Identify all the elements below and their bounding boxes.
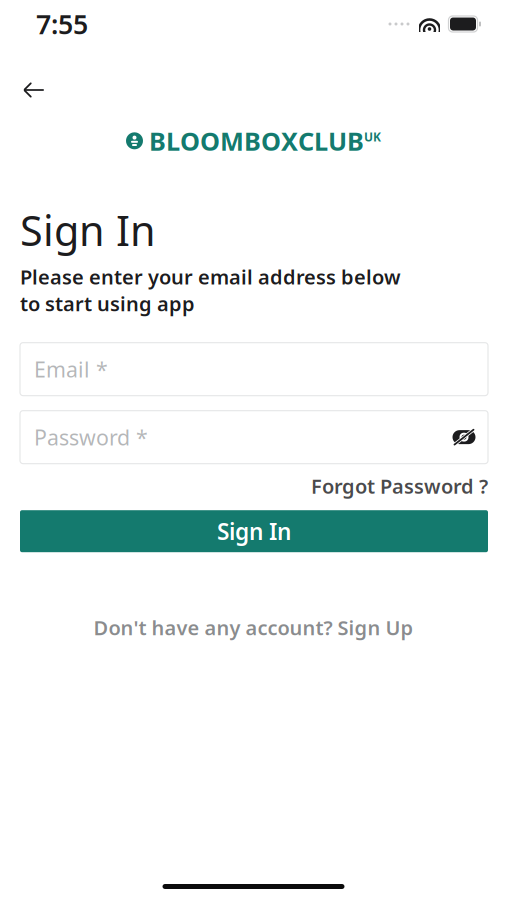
staticText: UK bbox=[364, 129, 381, 145]
button[interactable]: Don't have any account? Sign Up bbox=[93, 614, 413, 641]
staticText: Don't have any account? Sign Up bbox=[93, 614, 413, 641]
staticText: Sign In bbox=[217, 516, 291, 546]
staticText: X bbox=[281, 124, 298, 158]
staticText: Password * bbox=[34, 423, 148, 451]
staticText: 7:55 bbox=[36, 6, 88, 42]
staticText: Sign In bbox=[20, 203, 156, 257]
button[interactable]: Show password bbox=[444, 417, 484, 457]
staticText: Please enter your email address below to… bbox=[20, 263, 401, 317]
button[interactable]: Back bbox=[12, 70, 56, 110]
staticText: Email * bbox=[34, 355, 108, 383]
button[interactable]: Forgot Password ? bbox=[311, 473, 488, 499]
staticText: CLUB bbox=[298, 124, 364, 158]
button[interactable]: Email * bbox=[20, 343, 488, 396]
staticText: BLOOMBO bbox=[149, 124, 281, 158]
button[interactable]: Sign In bbox=[20, 510, 488, 552]
staticText: Forgot Password ? bbox=[311, 473, 488, 499]
